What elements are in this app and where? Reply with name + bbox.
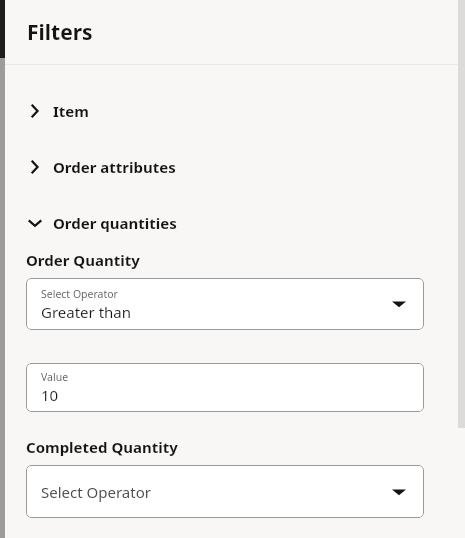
staticText: Select Operator <box>41 482 151 502</box>
staticText: Select Operator <box>41 287 118 301</box>
staticText: Filters <box>27 18 93 47</box>
staticText: Order quantities <box>53 213 177 233</box>
button[interactable]: Select Operator <box>26 465 424 518</box>
staticText: 10 <box>41 385 59 405</box>
button[interactable]: Item <box>5 96 445 126</box>
button[interactable]: Open operator list <box>392 485 406 499</box>
button[interactable]: Order attributes <box>5 152 445 182</box>
button[interactable]: Order quantities <box>5 208 445 238</box>
staticText: Completed Quantity <box>26 437 178 457</box>
staticText: Order Quantity <box>26 250 140 270</box>
staticText: Order attributes <box>53 157 176 177</box>
staticText: Item <box>53 101 89 121</box>
button[interactable]: Open operator list <box>392 297 406 311</box>
button[interactable]: Select Operator <box>26 278 424 330</box>
staticText: Greater than <box>41 302 132 322</box>
button[interactable]: Value <box>26 363 424 412</box>
staticText: Value <box>41 370 69 384</box>
